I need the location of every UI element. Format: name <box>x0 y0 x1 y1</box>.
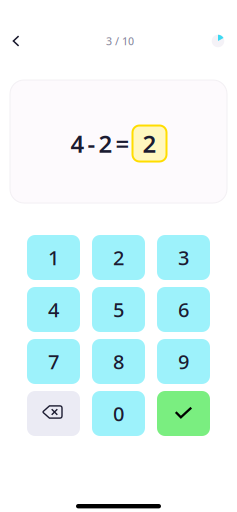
staticText: 2 <box>142 128 156 159</box>
staticText: 2 <box>98 128 112 159</box>
button[interactable]: Submit <box>157 391 210 436</box>
staticText: 3 <box>178 244 189 271</box>
staticText: - <box>87 128 95 159</box>
staticText: 2 <box>113 244 124 271</box>
staticText: 5 <box>113 296 124 323</box>
staticText: = <box>115 128 129 159</box>
staticText: 0 <box>113 400 124 427</box>
button[interactable]: 5 <box>92 287 145 332</box>
staticText: 8 <box>113 348 124 375</box>
staticText: 3 / 10 <box>106 34 134 48</box>
staticText: 4 <box>70 128 84 159</box>
staticText: 1 <box>48 244 59 271</box>
button[interactable]: Delete <box>27 391 80 436</box>
button[interactable]: Progress <box>203 26 233 56</box>
button[interactable]: 6 <box>157 287 210 332</box>
staticText: 7 <box>48 348 59 375</box>
staticText: 6 <box>178 296 189 323</box>
button[interactable]: 2 <box>92 235 145 280</box>
staticText: 4 <box>48 296 59 323</box>
button[interactable]: 9 <box>157 339 210 384</box>
button[interactable]: 0 <box>92 391 145 436</box>
button[interactable]: 7 <box>27 339 80 384</box>
staticText: 9 <box>178 348 189 375</box>
button[interactable]: 8 <box>92 339 145 384</box>
button[interactable]: 3 <box>157 235 210 280</box>
button[interactable]: Back <box>1 26 31 56</box>
button[interactable]: 1 <box>27 235 80 280</box>
button[interactable]: 4 <box>27 287 80 332</box>
